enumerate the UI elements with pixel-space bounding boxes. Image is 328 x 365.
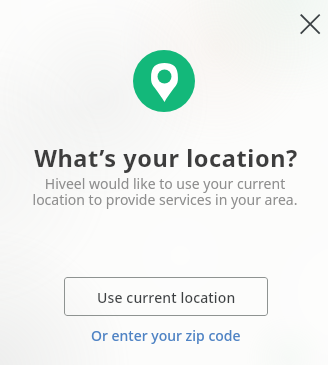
button[interactable]: Or enter your zip code	[2, 324, 328, 346]
staticText: Hiveel would like to use your current lo…	[1, 174, 328, 209]
staticText: What’s your location?	[2, 142, 328, 174]
button[interactable]: Use current location	[64, 277, 268, 316]
staticText: Or enter your zip code	[91, 326, 241, 345]
button[interactable]: Close	[292, 6, 328, 42]
staticText: Use current location	[97, 288, 236, 307]
